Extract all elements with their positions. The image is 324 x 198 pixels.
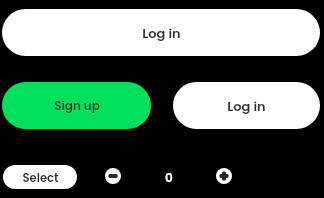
staticText: Select: [22, 170, 59, 186]
button[interactable]: Increase quantity: [216, 168, 232, 184]
staticText: 0: [165, 169, 173, 185]
staticText: Sign up: [54, 97, 100, 114]
staticText: Log in: [227, 97, 266, 115]
button[interactable]: Log in: [173, 82, 320, 129]
button[interactable]: Sign up: [2, 82, 151, 129]
button[interactable]: Select: [3, 165, 77, 189]
button[interactable]: Decrease quantity: [105, 168, 121, 184]
staticText: Log in: [142, 24, 181, 42]
button[interactable]: Log in: [2, 9, 320, 56]
